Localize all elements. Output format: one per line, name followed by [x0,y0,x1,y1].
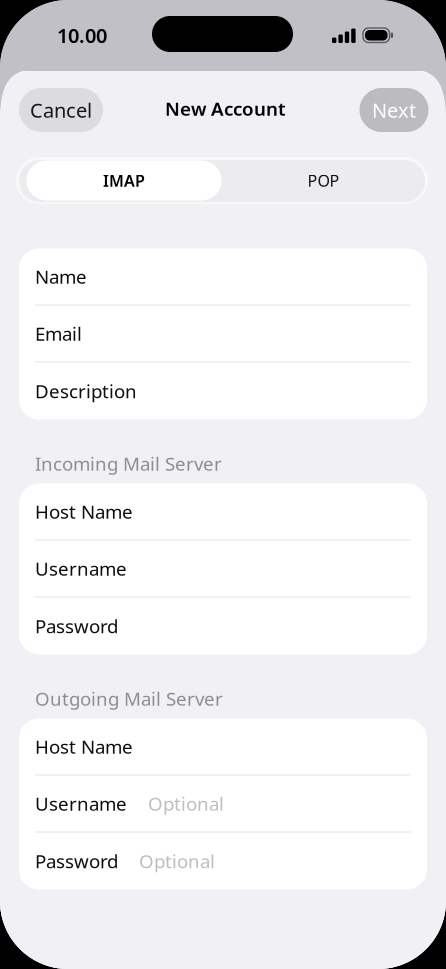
staticText: Name [35,264,87,289]
staticText: Optional [139,849,215,873]
staticText: IMAP [103,170,145,191]
staticText: Optional [148,791,224,816]
staticText: Outgoing Mail Server [35,686,223,711]
staticText: Cancel [30,97,92,123]
staticText: Incoming Mail Server [35,451,222,476]
staticText: New Account [165,96,286,121]
staticText: 10.00 [57,22,107,49]
staticText: Password [35,849,118,873]
staticText: Next [372,97,416,123]
staticText: POP [307,170,339,191]
staticText: Host Name [35,499,133,524]
button[interactable]: POP [221,160,426,200]
button[interactable]: Cancel [19,88,103,132]
staticText: Description [35,379,137,403]
staticText: Password [35,614,118,638]
staticText: Host Name [35,734,133,759]
staticText: Username [35,791,127,816]
staticText: Username [35,556,127,581]
staticText: Email [35,321,82,346]
button[interactable]: Next [359,88,428,132]
button[interactable]: IMAP [26,160,221,200]
